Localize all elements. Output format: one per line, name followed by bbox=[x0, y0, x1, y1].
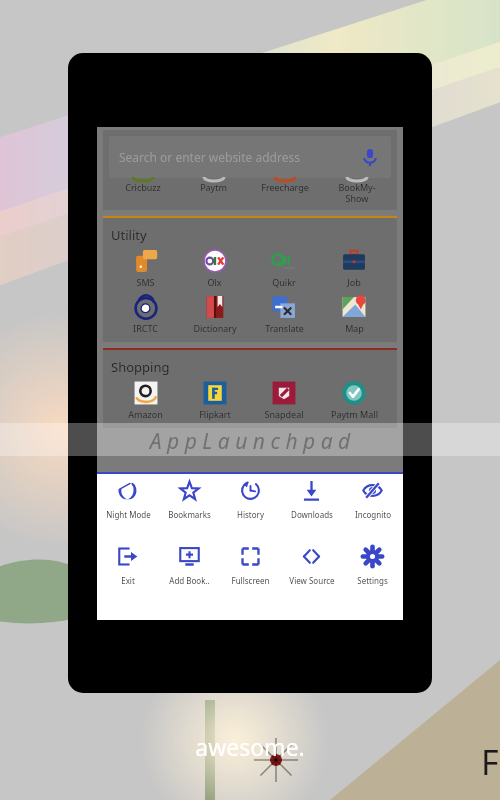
button[interactable]: Quikr bbox=[249, 248, 319, 288]
staticText: Quikr bbox=[272, 276, 296, 288]
button[interactable]: Fullscreen bbox=[220, 546, 281, 612]
staticText: Utility bbox=[111, 226, 147, 244]
button[interactable]: Night Mode bbox=[97, 480, 159, 546]
staticText: Shopping bbox=[111, 358, 170, 376]
staticText: Search or enter website address bbox=[119, 149, 300, 165]
staticText: BookMy- Show bbox=[338, 181, 376, 204]
button[interactable]: Exit bbox=[97, 546, 159, 612]
button[interactable]: Flipkart bbox=[180, 380, 249, 420]
button[interactable]: Job bbox=[319, 248, 389, 288]
button[interactable]: IRCTC bbox=[111, 294, 180, 334]
staticText: Cricbuzz bbox=[125, 181, 161, 193]
staticText: Incognito bbox=[355, 509, 391, 520]
staticText: Paytm bbox=[200, 181, 227, 193]
button[interactable]: Amazon bbox=[111, 380, 180, 420]
button[interactable]: Downloads bbox=[281, 480, 342, 546]
staticText: Settings bbox=[357, 575, 388, 586]
staticText: View Source bbox=[289, 575, 335, 586]
staticText: Olx bbox=[207, 276, 222, 288]
staticText: awesome. bbox=[0, 731, 500, 762]
button[interactable]: Paytm bbox=[178, 177, 249, 193]
staticText: Downloads bbox=[291, 509, 333, 520]
button[interactable]: Cricbuzz bbox=[107, 177, 178, 193]
staticText: Flipkart bbox=[199, 408, 231, 420]
button[interactable]: Snapdeal bbox=[249, 380, 319, 420]
staticText: IRCTC bbox=[133, 322, 158, 334]
button[interactable]: Settings bbox=[342, 546, 403, 612]
staticText: Bookmarks bbox=[168, 509, 211, 520]
staticText: Map bbox=[345, 322, 364, 334]
staticText: A p p L a u n c h p a d bbox=[0, 427, 500, 456]
button[interactable]: Bookmarks bbox=[159, 480, 220, 546]
staticText: Paytm Mall bbox=[331, 408, 378, 420]
button[interactable]: BookMy- Show bbox=[321, 177, 393, 204]
button[interactable]: SMS bbox=[111, 248, 180, 288]
button[interactable]: Voice search bbox=[361, 148, 379, 166]
button[interactable]: Search or enter website address bbox=[109, 136, 391, 178]
button[interactable]: Add Book.. bbox=[159, 546, 220, 612]
staticText: Exit bbox=[121, 575, 135, 586]
button[interactable]: Map bbox=[319, 294, 389, 334]
staticText: Fullscreen bbox=[231, 575, 270, 586]
staticText: Amazon bbox=[128, 408, 163, 420]
staticText: Add Book.. bbox=[169, 575, 210, 586]
button[interactable]: Olx bbox=[180, 248, 249, 288]
staticText: Translate bbox=[265, 322, 304, 334]
staticText: Freecharge bbox=[261, 181, 309, 193]
button[interactable]: View Source bbox=[281, 546, 342, 612]
button[interactable]: Dictionary bbox=[180, 294, 249, 334]
staticText: Job bbox=[347, 276, 361, 288]
staticText: Night Mode bbox=[106, 509, 151, 520]
staticText: History bbox=[237, 509, 264, 520]
button[interactable]: Incognito bbox=[342, 480, 403, 546]
staticText: SMS bbox=[136, 276, 155, 288]
staticText: Snapdeal bbox=[264, 408, 304, 420]
button[interactable]: Translate bbox=[249, 294, 319, 334]
staticText: F bbox=[481, 739, 499, 785]
button[interactable]: History bbox=[220, 480, 281, 546]
button[interactable]: Paytm Mall bbox=[319, 380, 389, 420]
button[interactable]: Freecharge bbox=[249, 177, 321, 193]
staticText: Dictionary bbox=[193, 322, 237, 334]
